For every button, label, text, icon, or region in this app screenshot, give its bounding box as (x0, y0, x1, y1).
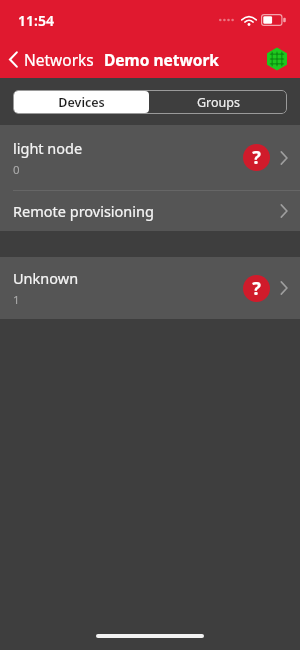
staticText: ? (252, 276, 261, 301)
staticText: 1 (13, 292, 20, 308)
staticText: Networks (24, 49, 94, 70)
staticText: 11:54 (18, 11, 54, 30)
button[interactable]: Unknown device info (243, 144, 270, 171)
staticText: Demo network (104, 49, 219, 70)
staticText: Unknown (13, 268, 79, 288)
staticText: Remote provisioning (13, 201, 154, 221)
button[interactable]: Devices (14, 91, 149, 113)
button[interactable]: Unknown device info (243, 275, 270, 302)
button[interactable]: Groups (150, 90, 287, 114)
button[interactable]: Remote provisioning (0, 191, 300, 231)
staticText: Groups (197, 94, 240, 111)
button[interactable]: Mesh network (262, 44, 292, 74)
staticText: ? (252, 145, 261, 170)
button[interactable]: Unknown (0, 257, 300, 319)
button[interactable]: light node (0, 125, 300, 190)
staticText: Devices (58, 94, 105, 111)
staticText: light node (13, 138, 83, 158)
button[interactable]: Networks (0, 45, 100, 74)
staticText: 0 (13, 162, 20, 178)
